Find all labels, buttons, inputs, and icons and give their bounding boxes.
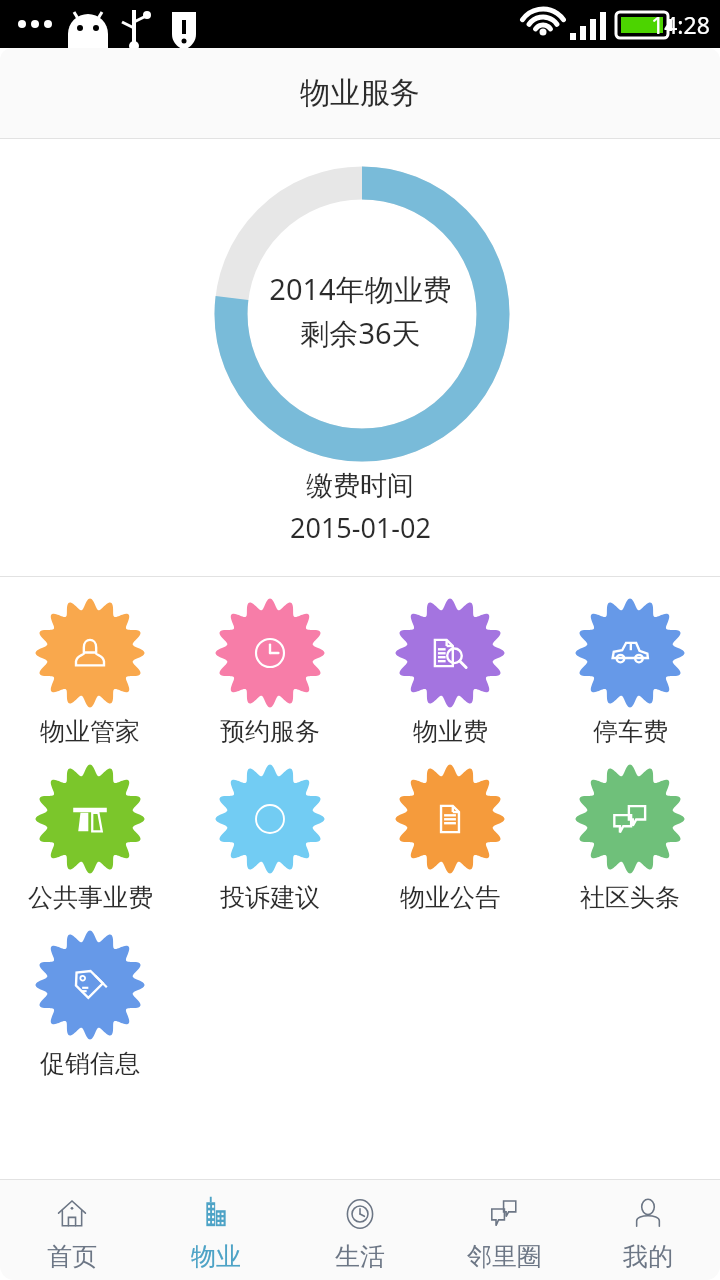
button[interactable]: 物业费 xyxy=(360,591,540,753)
button[interactable]: 投诉建议 xyxy=(180,757,360,919)
staticText: 停车费 xyxy=(593,716,668,747)
button[interactable]: 停车费 xyxy=(540,591,720,753)
staticText: 2014年物业费 xyxy=(269,269,452,309)
staticText: 邻里圈 xyxy=(467,1241,542,1272)
button[interactable]: 公共事业费 xyxy=(0,757,180,919)
staticText: 物业管家 xyxy=(40,716,140,747)
button[interactable]: 邻里圈 xyxy=(432,1180,576,1280)
button[interactable]: 我的 xyxy=(576,1180,720,1280)
button[interactable]: 首页 xyxy=(0,1180,144,1280)
staticText: 物业公告 xyxy=(400,882,500,913)
staticText: 我的 xyxy=(623,1241,673,1272)
staticText: 剩余36天 xyxy=(300,313,421,353)
button[interactable]: 预约服务 xyxy=(180,591,360,753)
staticText: 物业 xyxy=(191,1241,241,1272)
staticText: 14:28 xyxy=(651,9,710,40)
staticText: 社区头条 xyxy=(580,882,680,913)
button[interactable]: 社区头条 xyxy=(540,757,720,919)
staticText: 生活 xyxy=(335,1241,385,1272)
staticText: 促销信息 xyxy=(40,1048,140,1079)
staticText: 预约服务 xyxy=(220,716,320,747)
button[interactable]: 生活 xyxy=(288,1180,432,1280)
button[interactable]: 促销信息 xyxy=(0,923,180,1085)
staticText: 物业费 xyxy=(413,716,488,747)
staticText: 物业服务 xyxy=(300,74,420,112)
button[interactable]: 物业 xyxy=(144,1180,288,1280)
staticText: 投诉建议 xyxy=(220,882,320,913)
staticText: 2015-01-02 xyxy=(290,509,431,546)
button[interactable]: 物业公告 xyxy=(360,757,540,919)
staticText: 公共事业费 xyxy=(28,882,153,913)
button[interactable]: 物业管家 xyxy=(0,591,180,753)
staticText: 首页 xyxy=(47,1241,97,1272)
staticText: 缴费时间 xyxy=(306,469,414,503)
